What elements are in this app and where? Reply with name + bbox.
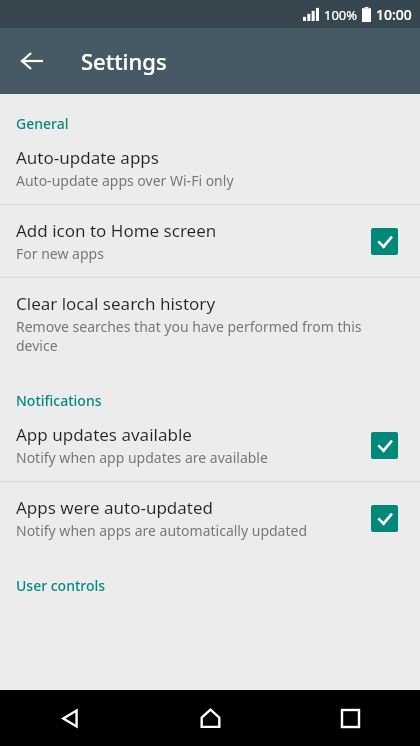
staticText: Notify when app updates are available: [16, 448, 268, 467]
staticText: Notify when apps are automatically updat…: [16, 521, 308, 540]
staticText: 100%: [324, 6, 358, 24]
button[interactable]: Auto-update apps: [0, 135, 420, 204]
button[interactable]: Back: [0, 690, 140, 746]
button[interactable]: Add icon to Home screen: [364, 221, 404, 261]
button[interactable]: Apps were auto-updated: [364, 498, 404, 538]
staticText: Apps were auto-updated: [16, 496, 214, 519]
button[interactable]: App updates available: [364, 425, 404, 465]
staticText: Auto-update apps over Wi-Fi only: [16, 171, 234, 190]
button[interactable]: Add icon to Home screen: [0, 205, 420, 277]
staticText: Add icon to Home screen: [16, 219, 217, 242]
staticText: Clear local search history: [16, 292, 216, 315]
staticText: Remove searches that you have performed …: [16, 317, 404, 355]
button[interactable]: Apps were auto-updated: [0, 482, 420, 554]
button[interactable]: Recent apps: [280, 690, 420, 746]
button[interactable]: App updates available: [0, 412, 420, 481]
staticText: 10:00: [376, 5, 412, 24]
staticText: User controls: [16, 576, 106, 595]
staticText: General: [16, 114, 69, 133]
button[interactable]: Home: [140, 690, 280, 746]
staticText: Settings: [81, 46, 167, 76]
staticText: Notifications: [16, 391, 102, 410]
staticText: App updates available: [16, 423, 192, 446]
button[interactable]: Back: [10, 39, 54, 83]
button[interactable]: Clear local search history: [0, 278, 420, 369]
staticText: For new apps: [16, 244, 104, 263]
staticText: Auto-update apps: [16, 146, 159, 169]
